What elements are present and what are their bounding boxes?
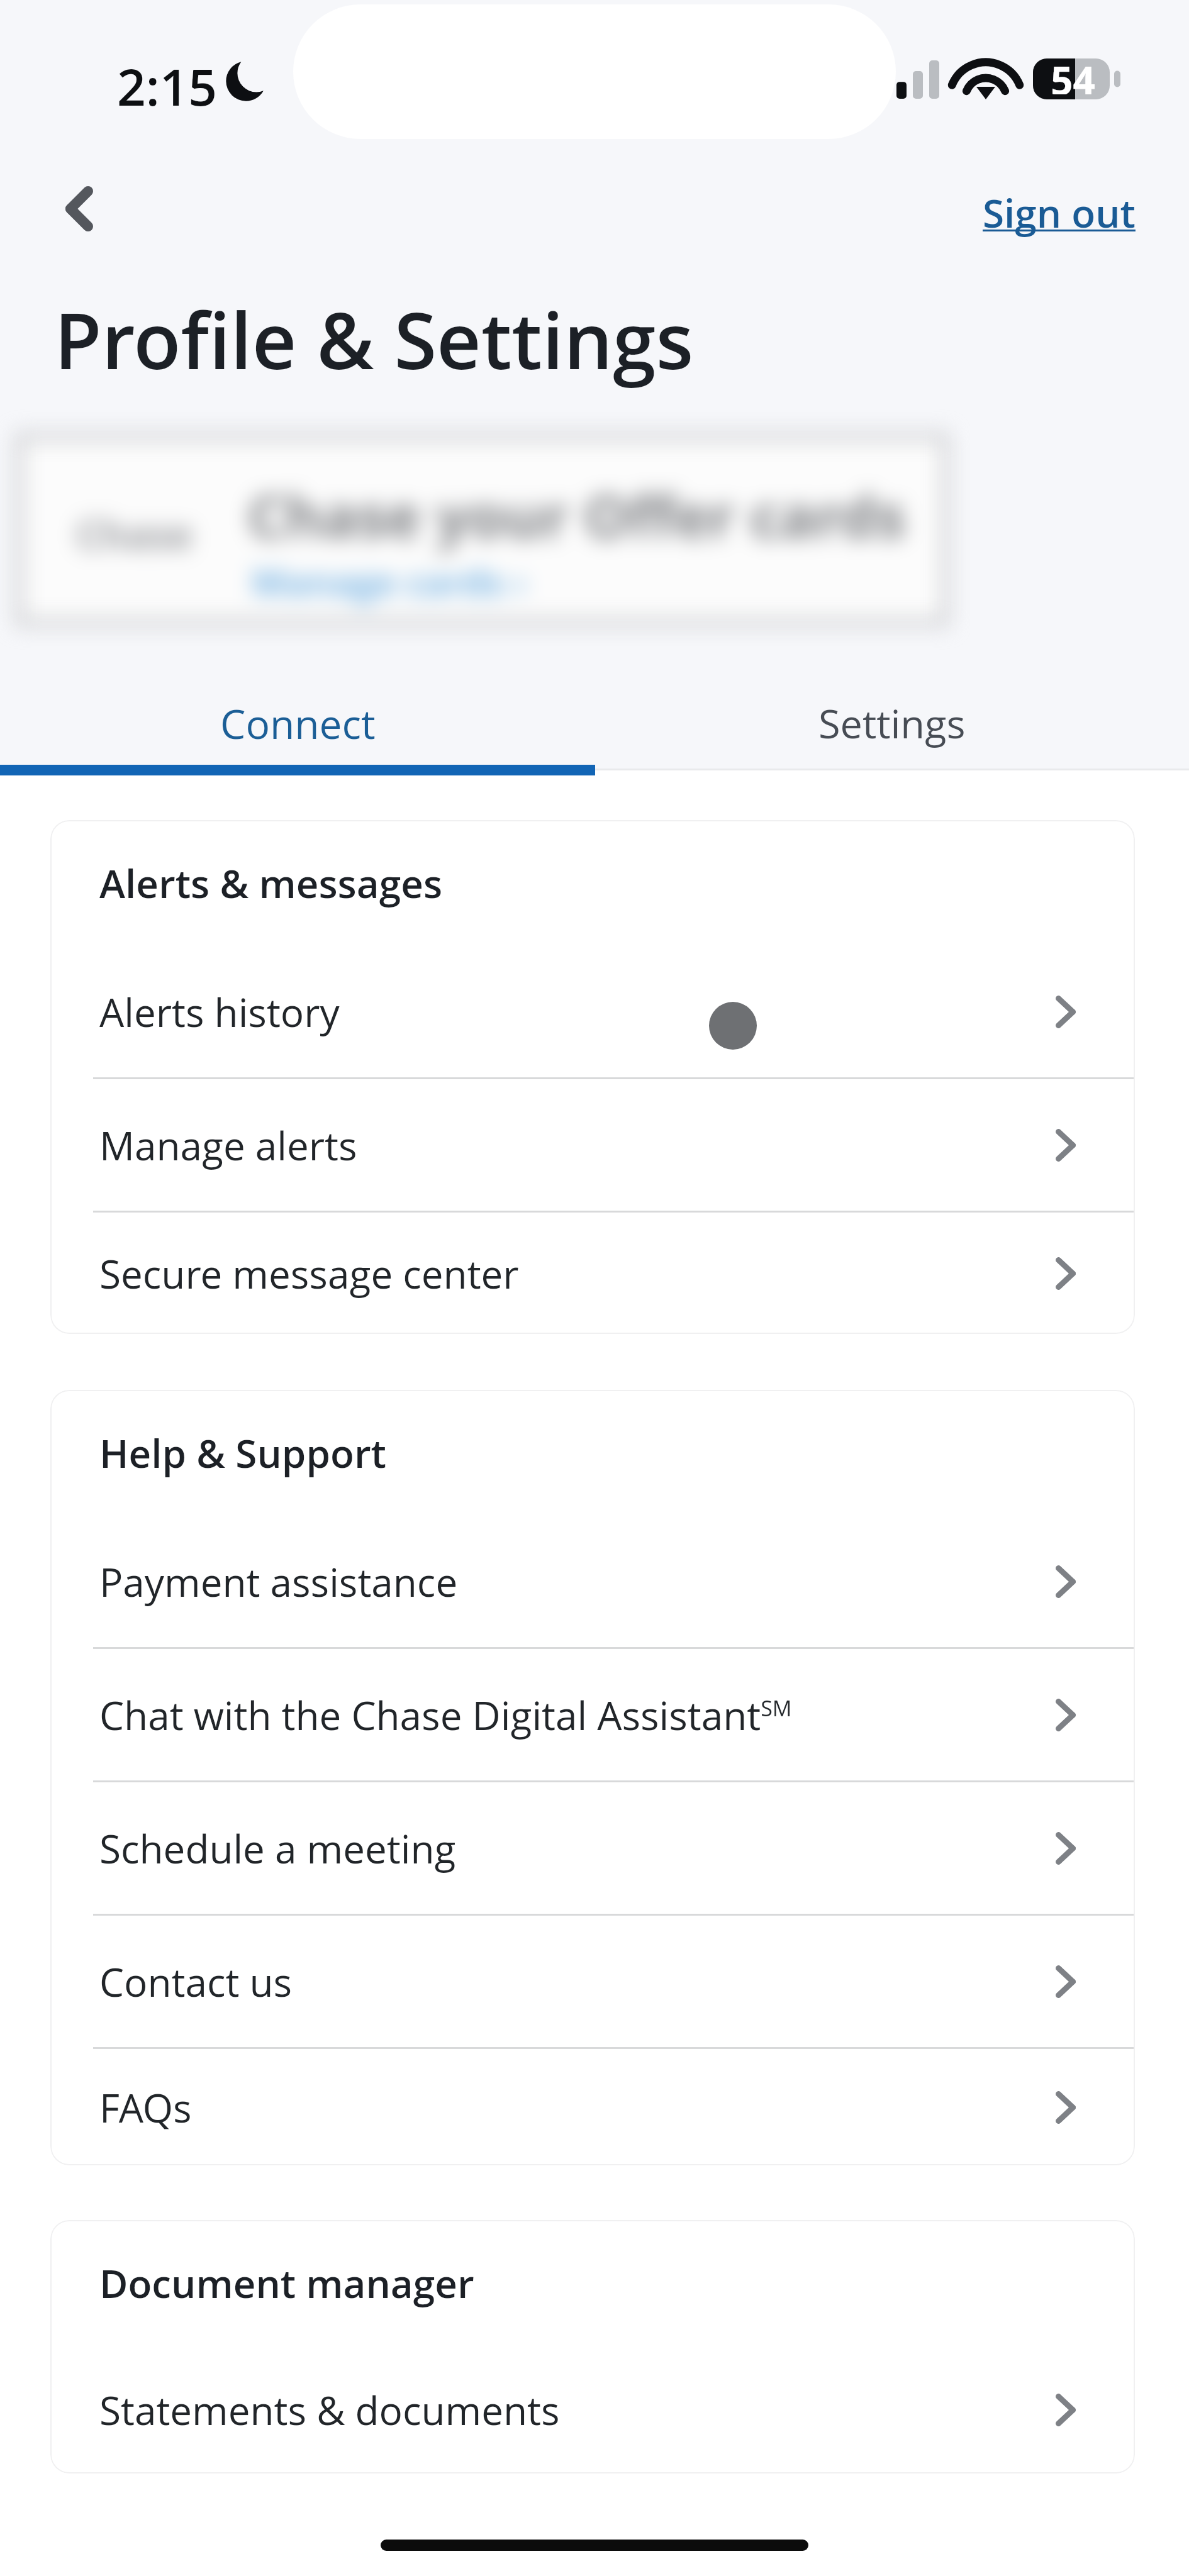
staticText: 2:15 <box>117 52 217 120</box>
button[interactable]: Manage alerts <box>50 1079 1135 1211</box>
button[interactable]: FAQs <box>50 2049 1135 2165</box>
staticText: Manage cards › <box>252 557 527 606</box>
staticText: Alerts & messages <box>99 857 443 909</box>
button[interactable]: Schedule a meeting <box>50 1782 1135 1914</box>
staticText: Chase <box>76 508 193 560</box>
staticText: Chat with the Chase Digital AssistantSM <box>99 1689 792 1741</box>
staticText: Statements & documents <box>99 2384 560 2436</box>
button[interactable]: Payment assistance <box>50 1516 1135 1647</box>
staticText: Schedule a meeting <box>99 1822 456 1875</box>
button[interactable]: Sign out <box>983 186 1136 239</box>
staticText: 54 <box>1051 53 1095 94</box>
button[interactable]: Chase <box>16 433 949 626</box>
staticText: Connect <box>220 696 376 751</box>
staticText: Settings <box>818 696 966 750</box>
button[interactable]: Statements & documents <box>50 2346 1135 2473</box>
button[interactable]: Contact us <box>50 1916 1135 2047</box>
button[interactable]: Connect <box>0 682 595 765</box>
button[interactable]: Back <box>29 158 130 259</box>
staticText: Contact us <box>99 1955 293 2008</box>
staticText: Profile & Settings <box>54 287 694 392</box>
button[interactable]: Alerts history <box>50 946 1135 1077</box>
staticText: Alerts history <box>99 985 340 1038</box>
button[interactable]: Chat with the Chase Digital AssistantSM <box>50 1649 1135 1780</box>
staticText: Secure message center <box>99 1247 519 1300</box>
button[interactable]: Secure message center <box>50 1213 1135 1334</box>
staticText: Document manager <box>99 2257 474 2309</box>
staticText: FAQs <box>99 2081 192 2134</box>
staticText: Payment assistance <box>99 1555 458 1608</box>
staticText: Chase your Offer cards <box>248 476 906 555</box>
staticText: Sign out <box>983 186 1136 239</box>
button[interactable]: Settings <box>595 682 1189 765</box>
staticText: Manage alerts <box>99 1119 357 1172</box>
staticText: Help & Support <box>99 1426 386 1479</box>
